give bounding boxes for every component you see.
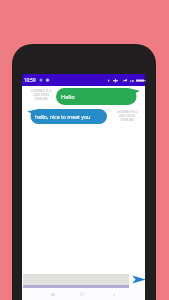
staticText: Hello [61, 93, 75, 101]
button[interactable]: Send [131, 271, 146, 287]
staticText: e7d3f8b9-f1c2 [31, 89, 52, 93]
button[interactable]: Recents [48, 289, 58, 299]
staticText: 10:59 [24, 77, 36, 83]
button[interactable] [23, 274, 129, 288]
button[interactable]: Home [77, 289, 87, 299]
staticText: 10:58 AM [34, 97, 48, 101]
button[interactable]: Back [108, 289, 118, 299]
staticText: hello, nice to meet you [35, 113, 91, 120]
staticText: 2023-09-05 [33, 93, 50, 97]
staticText: 2023-09-05 [119, 114, 136, 118]
staticText: e7d3f8b9-f1c2 [117, 110, 138, 114]
staticText: 10:58 AM [120, 118, 134, 122]
